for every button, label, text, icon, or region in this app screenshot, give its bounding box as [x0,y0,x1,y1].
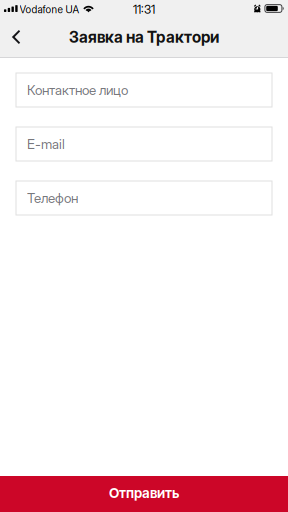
button[interactable]: Back [0,19,32,57]
button[interactable]: Контактное лицо [16,73,272,107]
staticText: Заявка на Трактори [69,27,219,46]
staticText: Контактное лицо [27,82,128,98]
staticText: E-mail [27,136,65,152]
staticText: Vodafone UA [20,3,80,16]
button[interactable]: Телефон [16,181,272,215]
button[interactable]: E-mail [16,127,272,161]
staticText: Отправить [109,485,179,501]
staticText: Телефон [27,190,78,206]
staticText: 11:31 [133,2,155,17]
button[interactable]: Отправить [0,476,288,512]
